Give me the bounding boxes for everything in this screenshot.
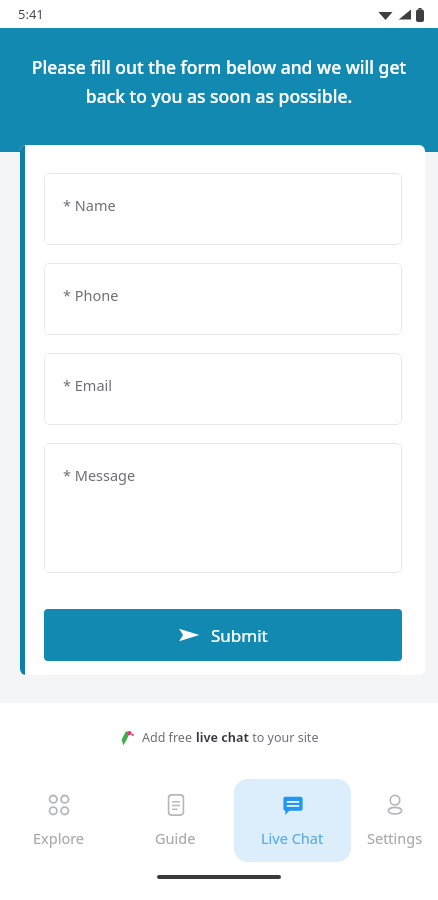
button[interactable]: * Email bbox=[44, 353, 402, 425]
button[interactable]: Guide bbox=[117, 779, 234, 862]
staticText: Add free bbox=[142, 729, 196, 746]
other: Live Chat bbox=[281, 793, 305, 817]
staticText: * Email bbox=[63, 375, 112, 395]
staticText: Live Chat bbox=[261, 828, 324, 848]
other: Explore bbox=[47, 793, 71, 817]
other: Guide bbox=[164, 793, 188, 817]
button[interactable]: Add free bbox=[119, 729, 319, 746]
button[interactable]: * Name bbox=[44, 173, 402, 245]
button[interactable]: Explore bbox=[0, 779, 117, 862]
button[interactable]: Live Chat bbox=[234, 779, 351, 862]
other: Settings bbox=[383, 793, 407, 817]
staticText: Explore bbox=[33, 828, 85, 848]
staticText: Please fill out the form below and we wi… bbox=[28, 55, 410, 108]
staticText: Submit bbox=[211, 624, 268, 647]
staticText: * Phone bbox=[63, 285, 119, 305]
staticText: 5:41 bbox=[18, 5, 44, 23]
button[interactable]: Submit bbox=[44, 609, 402, 661]
staticText: * Message bbox=[63, 465, 136, 485]
staticText: * Name bbox=[63, 195, 116, 215]
staticText: to your site bbox=[249, 729, 319, 746]
staticText: live chat bbox=[196, 729, 249, 746]
staticText: Settings bbox=[367, 828, 423, 848]
button[interactable]: Settings bbox=[351, 779, 438, 862]
staticText: Guide bbox=[155, 828, 196, 848]
button[interactable]: * Phone bbox=[44, 263, 402, 335]
button[interactable]: * Message bbox=[44, 443, 402, 573]
